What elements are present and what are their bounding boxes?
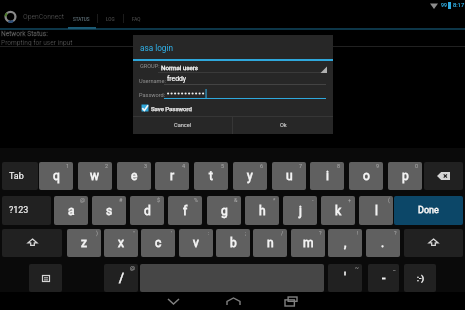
- button[interactable]: e: [117, 162, 151, 190]
- staticText: !: [357, 230, 359, 236]
- staticText: f: [183, 204, 188, 218]
- button[interactable]: Shift: [404, 229, 463, 257]
- staticText: ~: [355, 265, 359, 271]
- button[interactable]: Back: [148, 292, 198, 310]
- button[interactable]: Change keyboard: [29, 264, 62, 292]
- staticText: &: [234, 197, 238, 203]
- staticText: d: [144, 204, 151, 218]
- staticText: k: [335, 204, 342, 218]
- staticText: 0: [415, 163, 419, 169]
- staticText: 99: [441, 2, 447, 8]
- staticText: Ok: [280, 122, 287, 129]
- staticText: 1: [66, 163, 70, 169]
- button[interactable]: f: [168, 196, 202, 225]
- staticText: $: [157, 197, 161, 203]
- staticText: ?: [319, 230, 322, 236]
- staticText: j: [299, 204, 302, 218]
- staticText: u: [286, 169, 293, 183]
- button[interactable]: w: [78, 162, 112, 190]
- staticText: ?: [394, 230, 397, 236]
- button[interactable]: p: [388, 162, 422, 190]
- button[interactable]: y: [233, 162, 267, 190]
- staticText: 7: [299, 163, 303, 169]
- button[interactable]: b: [216, 229, 250, 257]
- button[interactable]: o: [349, 162, 383, 190]
- staticText: y: [247, 169, 253, 183]
- staticText: ": [133, 230, 135, 236]
- staticText: _: [393, 265, 396, 271]
- staticText: Done: [418, 205, 439, 216]
- button[interactable]: :-): [404, 264, 436, 292]
- button[interactable]: q: [39, 162, 73, 190]
- staticText: r: [170, 169, 175, 183]
- button[interactable]: g: [207, 196, 241, 225]
- staticText: GROUP:: [140, 63, 160, 70]
- button[interactable]: Home: [208, 292, 258, 310]
- button[interactable]: m: [291, 229, 325, 257]
- button[interactable]: Ok: [233, 117, 333, 134]
- staticText: .: [381, 236, 385, 250]
- button[interactable]: Normal users: [158, 61, 327, 73]
- button[interactable]: ,: [328, 229, 362, 257]
- staticText: p: [402, 169, 409, 183]
- staticText: b: [230, 236, 237, 250]
- staticText: LOG: [106, 17, 115, 22]
- button[interactable]: l: [359, 196, 393, 225]
- button[interactable]: j: [283, 196, 317, 225]
- staticText: ;: [245, 230, 247, 236]
- staticText: n: [267, 236, 274, 250]
- button[interactable]: .: [366, 229, 400, 257]
- button[interactable]: ': [328, 264, 362, 292]
- staticText: ,: [344, 236, 347, 250]
- staticText: g: [221, 204, 228, 218]
- button[interactable]: k: [321, 196, 355, 225]
- staticText: %: [194, 197, 199, 203]
- button[interactable]: Done: [394, 196, 463, 225]
- staticText: #: [119, 197, 123, 203]
- button[interactable]: -: [368, 264, 399, 292]
- button[interactable]: Recent apps: [266, 292, 316, 310]
- button[interactable]: c: [141, 229, 175, 257]
- button[interactable]: LOG: [98, 13, 123, 25]
- staticText: FAQ: [132, 17, 141, 22]
- button[interactable]: s: [92, 196, 126, 225]
- staticText: Network Status:: [1, 30, 48, 38]
- button[interactable]: h: [245, 196, 279, 225]
- staticText: l: [375, 204, 378, 218]
- button[interactable]: u: [272, 162, 306, 190]
- staticText: +: [348, 197, 352, 203]
- button[interactable]: Backspace: [424, 162, 463, 190]
- button[interactable]: Save Password: [141, 103, 192, 112]
- button[interactable]: FAQ: [124, 13, 149, 25]
- staticText: Username:: [139, 78, 166, 85]
- staticText: o: [363, 169, 370, 183]
- staticText: /: [119, 271, 124, 285]
- staticText: Prompting for user input: [1, 39, 73, 47]
- staticText: x: [118, 236, 124, 250]
- button[interactable]: v: [179, 229, 213, 257]
- button[interactable]: i: [310, 162, 344, 190]
- staticText: ': [171, 230, 172, 236]
- button[interactable]: STATUS: [67, 13, 96, 25]
- button[interactable]: ?123: [2, 196, 51, 225]
- staticText: Cancel: [174, 122, 192, 129]
- staticText: Tab: [9, 171, 24, 182]
- button[interactable]: x: [104, 229, 138, 257]
- button[interactable]: z: [67, 229, 101, 257]
- staticText: 4: [182, 163, 186, 169]
- button[interactable]: Cancel: [133, 117, 232, 134]
- staticText: 5: [221, 163, 225, 169]
- staticText: (: [388, 197, 390, 203]
- button[interactable]: Tab: [2, 162, 38, 190]
- button[interactable]: n: [253, 229, 287, 257]
- button[interactable]: r: [155, 162, 189, 190]
- staticText: asa login: [140, 43, 173, 53]
- button[interactable]: a: [54, 196, 88, 225]
- button[interactable]: /: [104, 264, 138, 292]
- button[interactable]: t: [194, 162, 228, 190]
- staticText: ): [96, 230, 98, 236]
- staticText: Save Password: [151, 105, 192, 112]
- button[interactable]: d: [130, 196, 164, 225]
- button[interactable]: Shift: [2, 229, 62, 257]
